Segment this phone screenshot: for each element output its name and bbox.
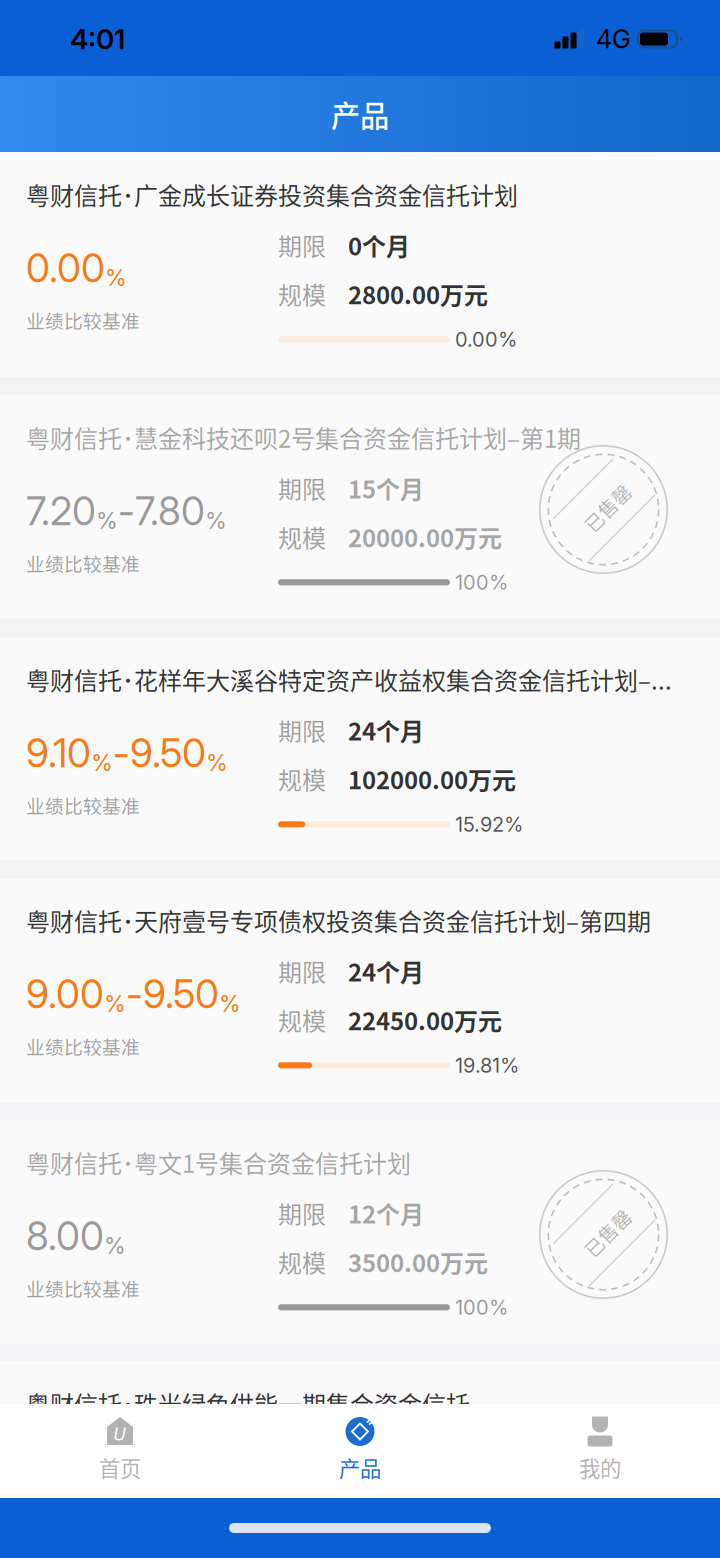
staticText: 期限	[278, 954, 326, 989]
staticText: 22450.00万元	[348, 1002, 502, 1037]
staticText: 业绩比较基准	[26, 306, 140, 333]
staticText: -	[113, 730, 130, 777]
staticText: 规模	[278, 519, 326, 554]
staticText: 9.00	[26, 971, 104, 1018]
staticText: 规模	[278, 761, 326, 796]
staticText: 9.50	[143, 971, 219, 1018]
staticText: 粤财信托･慧金科技还呗2号集合资金信托计划–第1期	[26, 420, 581, 455]
staticText: 3500.00万元	[348, 1244, 488, 1279]
staticText: 2800.00万元	[348, 276, 488, 311]
staticText: 0个月	[348, 228, 410, 263]
button[interactable]: 我的	[480, 1404, 720, 1498]
button[interactable]: 已售罄	[0, 395, 720, 619]
staticText: 7.20	[26, 488, 96, 535]
staticText: 规模	[278, 276, 326, 311]
staticText: %	[104, 1473, 126, 1500]
staticText: 已售罄	[579, 494, 636, 521]
staticText: 首页	[99, 1452, 141, 1483]
staticText: 12个月	[348, 1196, 424, 1231]
staticText: %	[219, 990, 241, 1017]
staticText: %	[104, 1232, 126, 1259]
staticText: 0.00%	[455, 327, 517, 351]
staticText: 4G	[596, 24, 631, 54]
staticText: 100%	[455, 570, 508, 594]
button[interactable]: 粤财信托･花样年大溪谷特定资产收益权集合资金信托计划–...	[0, 637, 720, 860]
staticText: 102000.00万元	[348, 761, 516, 796]
staticText: 期限	[278, 713, 326, 748]
staticText: 9.10	[26, 730, 91, 777]
staticText: %	[91, 749, 113, 776]
staticText: 4:01	[70, 22, 125, 56]
staticText: 9.50	[130, 730, 206, 777]
button[interactable]: 粤财信托･珠光绿色供能一期集合资金信托	[0, 1361, 720, 1558]
staticText: 规模	[278, 1002, 326, 1037]
staticText: 业绩比较基准	[26, 549, 140, 576]
staticText: 8.00	[26, 1213, 104, 1260]
staticText: 3500.00万元	[348, 1485, 488, 1520]
staticText: %	[96, 507, 118, 534]
staticText: 产品	[331, 93, 389, 135]
staticText: 0.00	[26, 245, 105, 292]
staticText: 业绩比较基准	[26, 791, 140, 818]
staticText: 12个月	[348, 1437, 424, 1472]
staticText: 粤财信托･广金成长证券投资集合资金信托计划	[26, 177, 518, 212]
staticText: 规模	[278, 1244, 326, 1279]
staticText: 粤财信托･珠光绿色供能一期集合资金信托	[26, 1386, 470, 1421]
staticText: 24个月	[348, 954, 424, 989]
staticText: 我的	[579, 1452, 621, 1483]
button[interactable]: 粤财信托･广金成长证券投资集合资金信托计划	[0, 152, 720, 377]
staticText: 粤财信托･花样年大溪谷特定资产收益权集合资金信托计划–...	[26, 662, 672, 697]
staticText: %	[104, 990, 126, 1017]
staticText: 粤财信托･粤文1号集合资金信托计划	[26, 1145, 411, 1180]
staticText: 8.00	[26, 1454, 104, 1501]
staticText: 业绩比较基准	[26, 1032, 140, 1059]
staticText: %	[105, 264, 127, 291]
staticText: 期限	[278, 471, 326, 506]
staticText: -	[118, 488, 135, 535]
staticText: %	[205, 507, 227, 534]
staticText: 产品	[339, 1452, 381, 1483]
staticText: 规模	[278, 1485, 326, 1520]
staticText: 20000.00万元	[348, 519, 502, 554]
button[interactable]: 已售罄	[0, 1120, 720, 1344]
staticText: 粤财信托･天府壹号专项债权投资集合资金信托计划–第四期	[26, 903, 651, 938]
button[interactable]: U	[0, 1404, 240, 1498]
button[interactable]: 产品	[240, 1404, 480, 1498]
staticText: 15个月	[348, 471, 424, 506]
staticText: %	[206, 749, 228, 776]
staticText: 期限	[278, 228, 326, 263]
staticText: U	[113, 1424, 126, 1445]
staticText: 期限	[278, 1196, 326, 1231]
button[interactable]: 粤财信托･天府壹号专项债权投资集合资金信托计划–第四期	[0, 878, 720, 1102]
staticText: 15.92%	[455, 812, 523, 836]
staticText: 7.80	[135, 488, 205, 535]
staticText: 100%	[455, 1295, 508, 1319]
staticText: 19.81%	[455, 1053, 519, 1077]
staticText: -	[126, 971, 143, 1018]
staticText: 24个月	[348, 713, 424, 748]
staticText: 已售罄	[579, 1219, 636, 1246]
staticText: 业绩比较基准	[26, 1274, 140, 1301]
